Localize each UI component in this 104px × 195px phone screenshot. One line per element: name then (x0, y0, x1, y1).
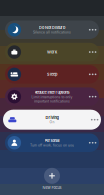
button[interactable]: New Focus (42, 168, 61, 190)
staticText: Silence all notifications (33, 30, 71, 34)
staticText: On (49, 120, 54, 124)
button[interactable]: Personal (5, 133, 99, 152)
staticText: Work (47, 50, 57, 54)
staticText: New Focus (42, 185, 61, 190)
staticText: Reduce Interruptions (34, 90, 69, 95)
staticText: important notifications (34, 99, 70, 103)
button[interactable]: Reduce Interruptions (5, 87, 99, 106)
staticText: Driving (45, 115, 58, 120)
button[interactable]: Do Not Disturb (5, 20, 99, 39)
staticText: Limit interruptions to only (31, 95, 72, 99)
staticText: Personal (44, 138, 59, 143)
button[interactable]: Driving (3, 110, 101, 130)
staticText: Do Not Disturb (39, 25, 65, 30)
button[interactable]: Work (5, 43, 99, 61)
staticText: Turn off work, focus on you (30, 143, 74, 147)
button[interactable]: Sleep (5, 65, 99, 84)
staticText: Sleep (47, 72, 57, 77)
